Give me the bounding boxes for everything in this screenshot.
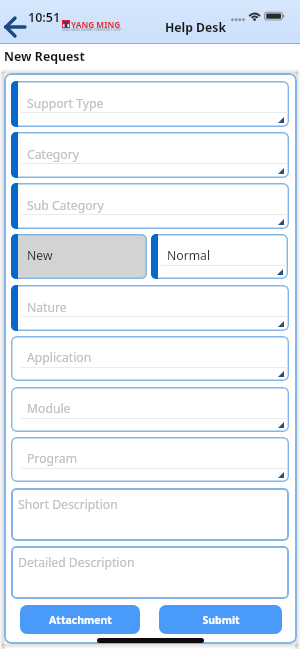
- staticText: Nature: [27, 299, 67, 316]
- staticText: Application: [27, 349, 92, 366]
- staticText: Submit: [202, 613, 240, 627]
- staticText: Support Type: [27, 95, 104, 112]
- button[interactable]: Program: [11, 437, 289, 482]
- staticText: Module: [27, 400, 71, 417]
- button[interactable]: Submit: [159, 605, 282, 634]
- staticText: YANG MING MARINE TRANSPORT CORP: [62, 28, 122, 32]
- staticText: New: [27, 247, 53, 264]
- button[interactable]: Nature: [11, 285, 289, 331]
- button[interactable]: Module: [11, 387, 289, 432]
- staticText: Program: [27, 450, 78, 467]
- staticText: New Request: [4, 48, 85, 65]
- button[interactable]: Normal: [151, 234, 288, 279]
- button[interactable]: Application: [11, 336, 289, 381]
- staticText: YANG MING: [71, 19, 121, 30]
- button[interactable]: Support Type: [11, 81, 289, 127]
- staticText: 10:51: [28, 9, 61, 26]
- staticText: Normal: [167, 247, 211, 264]
- button[interactable]: Attachment: [20, 605, 140, 634]
- button[interactable]: Back: [2, 14, 28, 40]
- button[interactable]: Short Description: [11, 488, 289, 541]
- staticText: Sub Category: [27, 197, 104, 214]
- staticText: Attachment: [49, 613, 112, 627]
- staticText: Category: [27, 146, 79, 163]
- staticText: Help Desk: [165, 19, 226, 36]
- button[interactable]: Sub Category: [11, 183, 289, 229]
- button[interactable]: Category: [11, 132, 289, 178]
- button[interactable]: New: [11, 234, 147, 279]
- staticText: Detailed Description: [18, 554, 135, 571]
- button[interactable]: Detailed Description: [11, 546, 289, 599]
- staticText: Short Description: [18, 496, 118, 513]
